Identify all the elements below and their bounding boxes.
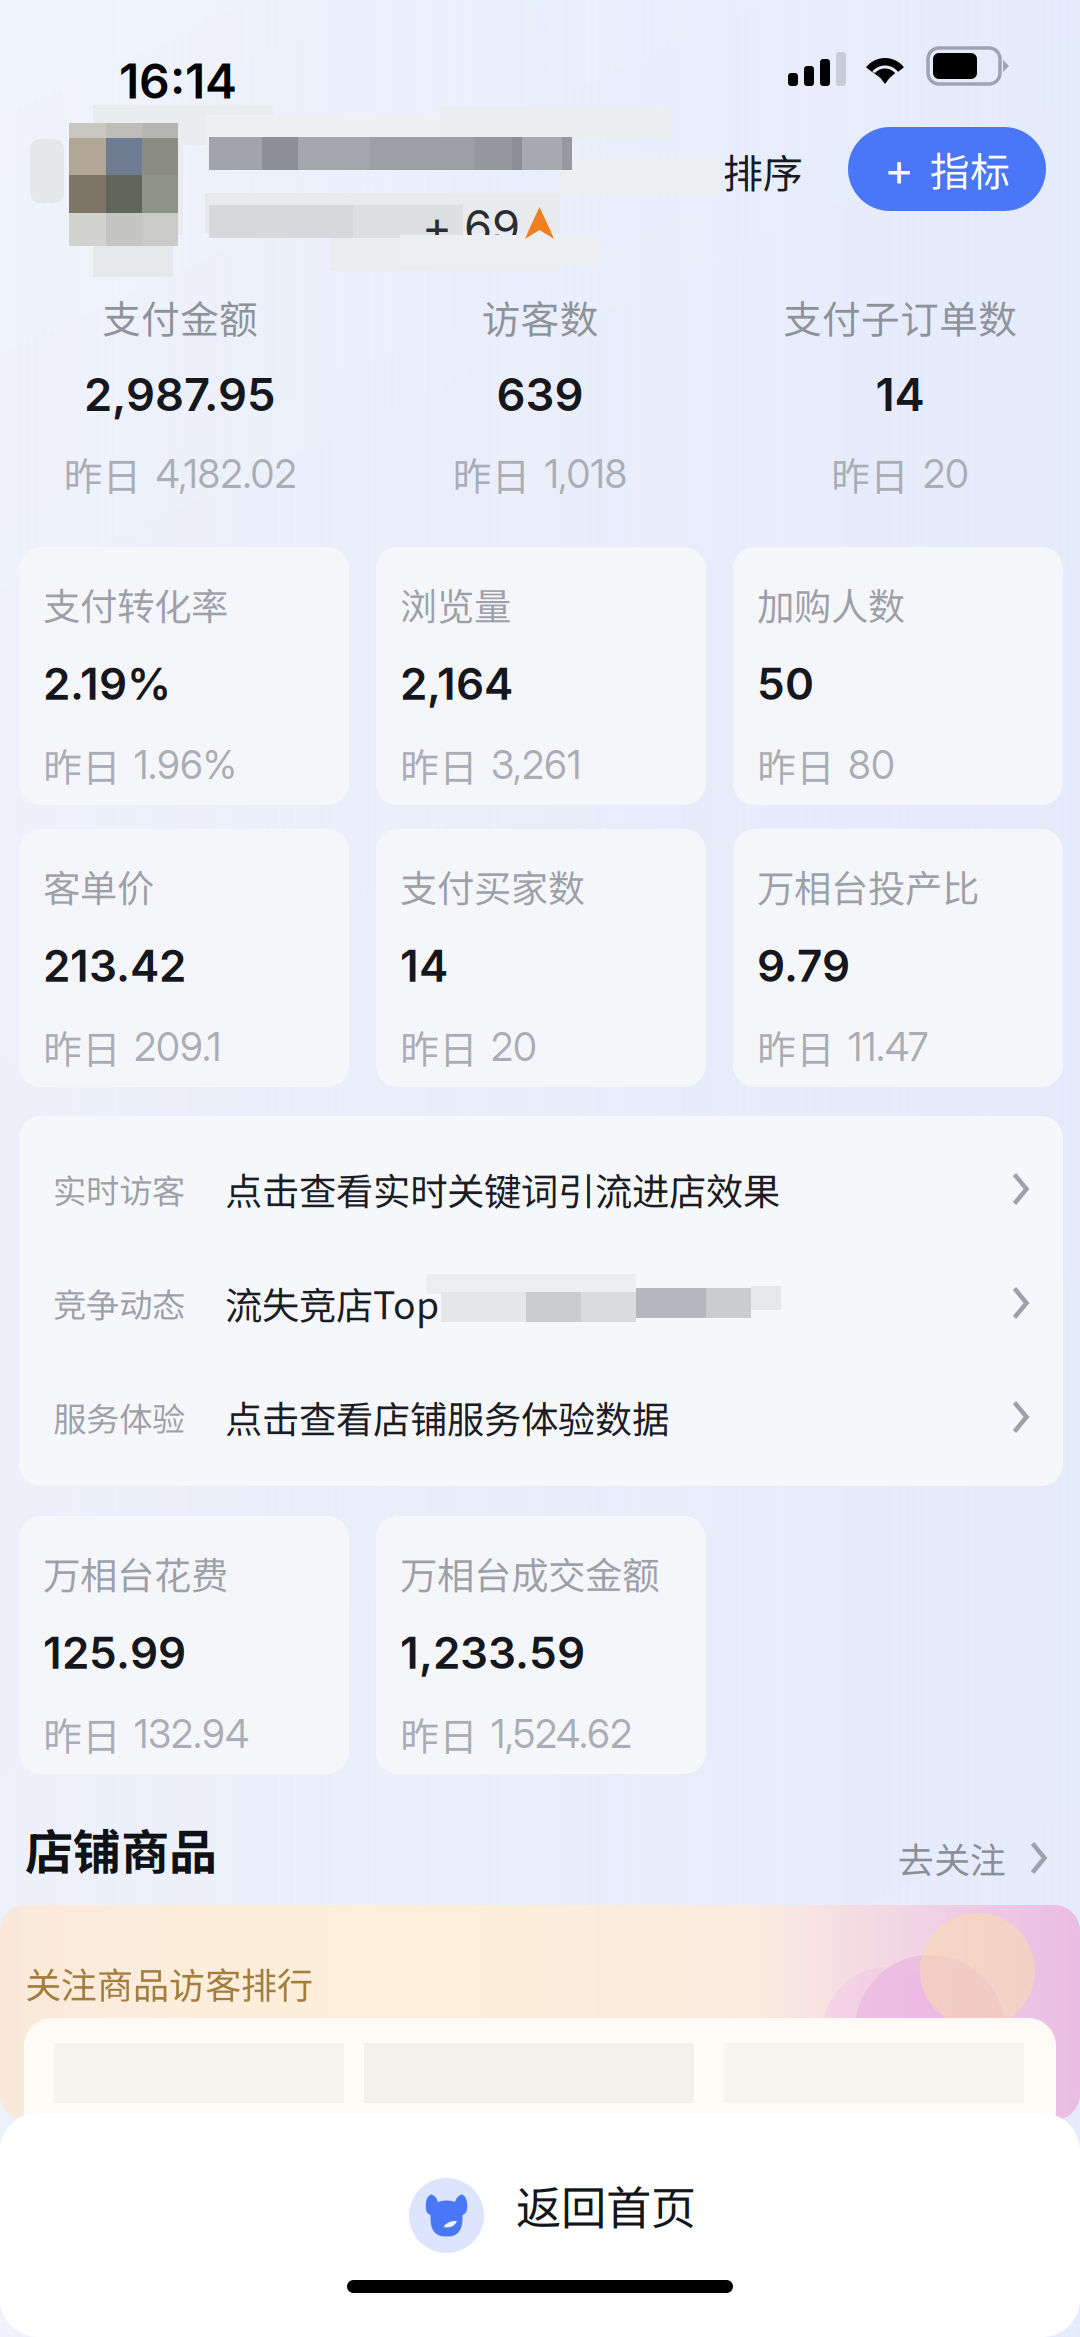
staticText: 昨日 (63, 446, 141, 502)
staticText: 万相台投产比 (757, 859, 979, 913)
staticText: 万相台花费 (43, 1546, 228, 1600)
staticText: 昨日 (400, 1706, 478, 1762)
staticText: + (884, 142, 914, 196)
button[interactable]: 去关注 (898, 1835, 1073, 1881)
staticText: 万相台成交金额 (400, 1546, 659, 1600)
button[interactable]: 浏览量 (376, 547, 706, 805)
button[interactable]: 实时访客 (19, 1132, 1063, 1246)
staticText: 店铺商品 (25, 1814, 217, 1883)
button[interactable]: + (848, 127, 1046, 211)
staticText: 服务体验 (53, 1393, 185, 1441)
staticText: +.69 (422, 199, 520, 254)
staticText: 昨日 (400, 1019, 478, 1075)
button[interactable]: 竞争动态 (19, 1246, 1063, 1360)
button[interactable]: 客单价 (19, 829, 349, 1087)
staticText: 14 (875, 367, 924, 422)
staticText: 4,182.02 (155, 451, 296, 497)
staticText: 支付买家数 (400, 859, 585, 913)
staticText: 关注商品访客排行 (25, 1957, 313, 2009)
staticText: 3,261 (491, 742, 581, 788)
staticText: 返回首页 (516, 2172, 696, 2238)
staticText: 209.1 (134, 1024, 221, 1070)
button[interactable]: 万相台花费 (19, 1516, 349, 1774)
staticText: 125.99 (43, 1626, 186, 1679)
button[interactable]: 加购人数 (733, 547, 1063, 805)
staticText: 昨日 (43, 1706, 121, 1762)
staticText: 1,233.59 (400, 1626, 585, 1679)
staticText: 1,018 (544, 451, 627, 497)
staticText: 去关注 (898, 1832, 1006, 1884)
staticText: 50 (757, 657, 814, 710)
staticText: 213.42 (43, 939, 186, 992)
button[interactable]: 支付转化率 (19, 547, 349, 805)
staticText: 80 (848, 742, 895, 788)
staticText: 排序 (723, 142, 803, 200)
staticText: 点击查看实时关键词引流进店效果 (225, 1162, 780, 1216)
staticText: 20 (491, 1024, 537, 1070)
staticText: 2.19% (43, 657, 171, 710)
staticText: 指标 (930, 140, 1010, 198)
staticText: 昨日 (43, 1019, 121, 1075)
staticText: 昨日 (831, 446, 909, 502)
staticText: 浏览量 (400, 577, 511, 631)
button[interactable]: 万相台投产比 (733, 829, 1063, 1087)
staticText: 132.94 (134, 1711, 249, 1757)
staticText: 639 (496, 367, 583, 422)
staticText: 昨日 (452, 446, 530, 502)
staticText: 加购人数 (757, 577, 905, 631)
staticText: 支付转化率 (43, 577, 228, 631)
staticText: 1.96% (134, 742, 237, 788)
button[interactable]: 万相台成交金额 (376, 1516, 706, 1774)
staticText: 16:14 (119, 52, 237, 110)
staticText: 9.79 (757, 939, 850, 992)
staticText: 昨日 (757, 1019, 835, 1075)
button[interactable]: 返回首页 (0, 2113, 1080, 2337)
staticText: 昨日 (43, 737, 121, 793)
staticText: 支付子订单数 (783, 289, 1017, 345)
staticText: 点击查看店铺服务体验数据 (225, 1390, 669, 1444)
staticText: 昨日 (400, 737, 478, 793)
staticText: 20 (923, 451, 969, 497)
staticText: 1,524.62 (491, 1711, 632, 1757)
staticText: 客单价 (43, 859, 154, 913)
staticText: 14 (400, 939, 448, 992)
staticText: 2,987.95 (84, 367, 276, 422)
button[interactable]: 排序 (714, 128, 812, 214)
button[interactable]: 支付买家数 (376, 829, 706, 1087)
staticText: 实时访客 (53, 1165, 185, 1213)
staticText: 11.47 (848, 1024, 928, 1070)
staticText: 访客数 (481, 289, 598, 345)
staticText: 支付金额 (102, 289, 258, 345)
button[interactable]: 服务体验 (19, 1360, 1063, 1474)
staticText: 昨日 (757, 737, 835, 793)
staticText: 2,164 (400, 657, 513, 710)
staticText: 竞争动态 (53, 1279, 185, 1327)
staticText: 流失竞店Top (225, 1276, 439, 1330)
